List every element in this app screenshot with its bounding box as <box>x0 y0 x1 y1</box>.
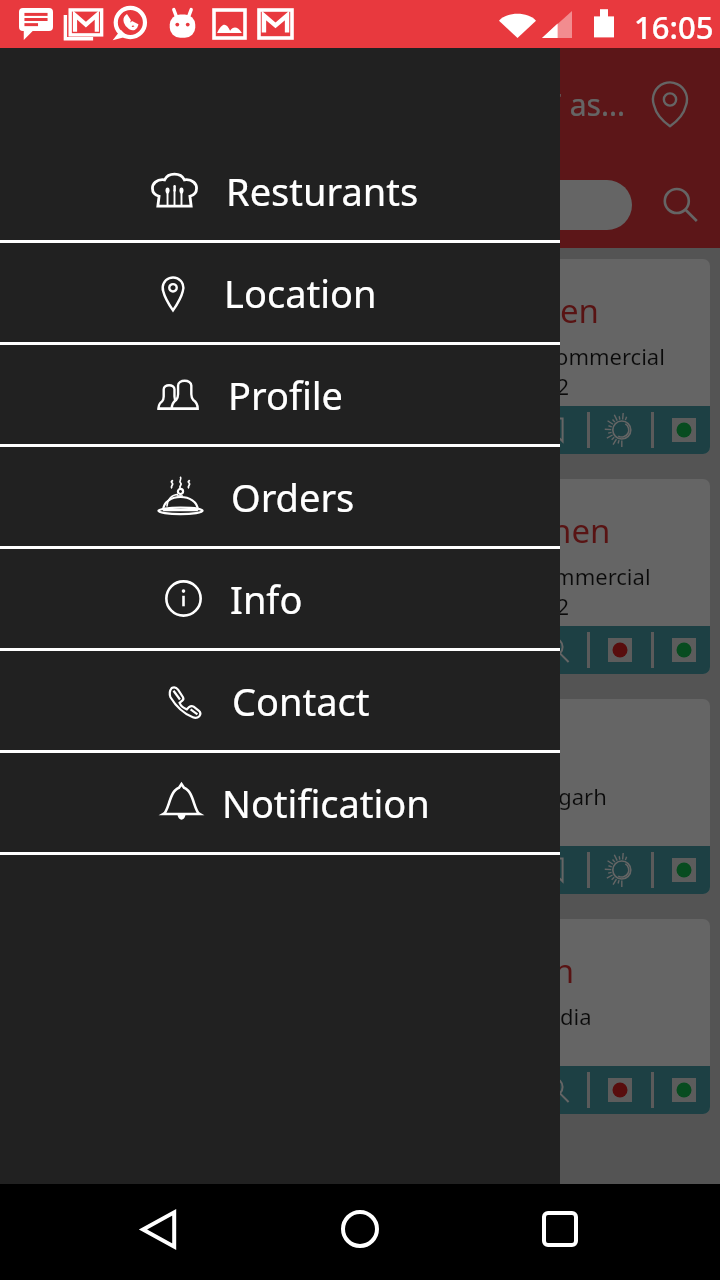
staticText: Location <box>224 267 377 319</box>
staticText: Resturants <box>226 165 419 217</box>
staticText: SCO 7 Near Bus Stand Sector 17 Phase 1 C… <box>65 781 607 811</box>
button[interactable]: Action <box>658 1066 710 1114</box>
button[interactable]: Action <box>594 1066 646 1114</box>
button[interactable]: Action <box>658 626 710 674</box>
staticText: Restaurants near Chandigarh Sector 7 as.… <box>26 84 626 125</box>
staticText: Near Bus Stand Chandigarh Punjab India 1… <box>65 371 570 401</box>
button[interactable]: Action <box>658 406 710 454</box>
button[interactable]: Action <box>530 1066 582 1114</box>
staticText: Sindhi Sweets Sector 17 Kitchen <box>65 728 557 773</box>
button[interactable]: Action <box>658 846 710 894</box>
button[interactable]: Action <box>530 626 582 674</box>
button[interactable]: Action <box>466 626 518 674</box>
button[interactable]: Resturants <box>0 141 560 240</box>
button[interactable]: Back <box>121 1191 197 1267</box>
button[interactable]: Action <box>530 846 582 894</box>
button[interactable]: Pal Dhaba Sector 28 Dhaba Kitchen <box>12 479 710 674</box>
staticText: 16:05 <box>634 6 714 48</box>
button[interactable]: Action <box>594 846 646 894</box>
staticText: Whistling Duck Sector 26 Kitchen <box>65 948 575 993</box>
button[interactable]: Action <box>530 406 582 454</box>
button[interactable]: Notification <box>0 753 560 852</box>
button[interactable]: Action <box>594 406 646 454</box>
button[interactable]: Profile <box>0 345 560 444</box>
staticText: Contact <box>232 675 370 727</box>
button[interactable]: Recent apps <box>522 1191 598 1267</box>
button[interactable]: Search <box>650 175 710 235</box>
staticText: Pal Dhaba Sector 28 Dhaba Kitchen <box>65 508 611 553</box>
staticText: Gopal's Sweets Restaurant Kitchen <box>65 288 599 333</box>
staticText: SCO 151 Sector 28 Inner Market Chandigar… <box>65 561 651 591</box>
button[interactable]: Location <box>634 69 706 141</box>
staticText: Near Bus Stand Chandigarh Punjab India 1… <box>65 591 570 621</box>
staticText: Profile <box>228 369 344 421</box>
staticText: SCO 21 Sector 35-C Inner Market, Chandig… <box>65 341 665 371</box>
button[interactable]: Action <box>594 626 646 674</box>
button[interactable]: Action <box>466 846 518 894</box>
button[interactable]: Location <box>0 243 560 342</box>
staticText: Notification <box>222 777 430 829</box>
button[interactable]: Orders <box>0 447 560 546</box>
button[interactable]: Contact <box>0 651 560 750</box>
button[interactable]: Sindhi Sweets Sector 17 Kitchen <box>12 699 710 894</box>
button[interactable]: Home <box>322 1191 398 1267</box>
staticText: SCO 34 Near Bus Stand Sector 26 Chandiga… <box>65 1001 592 1031</box>
staticText: Orders <box>231 471 355 523</box>
button[interactable]: Info <box>0 549 560 648</box>
button[interactable] <box>26 180 632 230</box>
button[interactable]: Gopal's Sweets Restaurant Kitchen <box>12 259 710 454</box>
button[interactable]: Action <box>466 406 518 454</box>
staticText: Info <box>230 573 303 625</box>
button[interactable]: Whistling Duck Sector 26 Kitchen <box>12 919 710 1114</box>
